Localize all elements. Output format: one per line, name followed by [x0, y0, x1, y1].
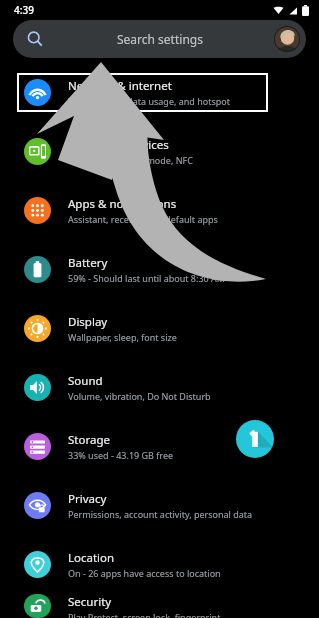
button[interactable]: Battery: [0, 240, 319, 299]
staticText: 59% - Should last until about 8:30 AM: [68, 272, 225, 284]
button[interactable]: Privacy: [0, 476, 319, 535]
staticText: Wallpaper, sleep, font size: [68, 331, 177, 343]
staticText: 33% used - 43.19 GB free: [68, 449, 174, 461]
staticText: Apps & notifications: [68, 196, 177, 212]
staticText: Wi-Fi, mobile, data usage, and hotspot: [68, 95, 230, 107]
button[interactable]: Apps & notifications: [0, 181, 319, 240]
button[interactable]: Connected devices: [0, 122, 319, 181]
button[interactable]: Storage: [0, 417, 319, 476]
staticText: Storage: [68, 432, 110, 448]
staticText: Bluetooth, driving mode, NFC: [68, 154, 193, 166]
staticText: Privacy: [68, 491, 107, 507]
staticText: 4:39: [14, 3, 34, 17]
staticText: Security: [68, 594, 112, 610]
staticText: Assistant, recent apps, default apps: [68, 213, 218, 225]
button[interactable]: Network & internet: [0, 63, 319, 122]
staticText: Volume, vibration, Do Not Disturb: [68, 390, 211, 402]
other: Search: [27, 31, 43, 47]
button[interactable]: Search: [13, 20, 306, 58]
staticText: Connected devices: [68, 137, 169, 153]
staticText: Location: [68, 550, 115, 566]
staticText: Battery: [68, 255, 108, 271]
button[interactable]: Location: [0, 535, 319, 594]
staticText: On - 26 apps have access to location: [68, 567, 221, 579]
staticText: Play Protect, screen lock, fingerprint: [68, 611, 221, 618]
staticText: Display: [68, 314, 108, 330]
staticText: Permissions, account activity, personal …: [68, 508, 253, 520]
staticText: Search settings: [117, 31, 203, 47]
staticText: Network & internet: [68, 78, 172, 94]
button[interactable]: Security: [0, 594, 319, 618]
button[interactable]: Display: [0, 299, 319, 358]
button[interactable]: Sound: [0, 358, 319, 417]
staticText: Sound: [68, 373, 103, 389]
button[interactable]: Account: [274, 26, 300, 52]
